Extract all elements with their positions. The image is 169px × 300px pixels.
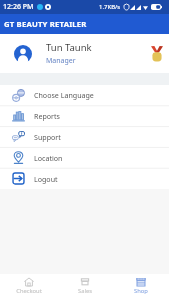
staticText: Reports (34, 111, 60, 121)
staticText: Manager (46, 56, 76, 66)
staticText: GT BEAUTY RETAILER (4, 19, 87, 29)
staticText: Choose Language (34, 90, 94, 100)
button[interactable]: Sales (57, 274, 113, 300)
staticText: Location (34, 153, 63, 163)
staticText: Shop (134, 287, 148, 295)
staticText: 1.7KB/s (99, 3, 121, 11)
staticText: Checkout (16, 287, 42, 295)
staticText: Tun Taunk (46, 41, 92, 54)
staticText: Support (34, 132, 61, 142)
button[interactable]: Logout (0, 168, 169, 189)
button[interactable]: Choose Language (0, 85, 169, 105)
staticText: Sales (78, 287, 92, 295)
staticText: Logout (34, 174, 58, 184)
button[interactable]: Checkout (0, 274, 57, 300)
button[interactable]: Support (0, 126, 169, 147)
button[interactable]: Reports (0, 105, 169, 126)
staticText: 12:26 PM (3, 2, 34, 12)
button[interactable]: Shop (113, 274, 169, 300)
button[interactable]: Location (0, 147, 169, 168)
